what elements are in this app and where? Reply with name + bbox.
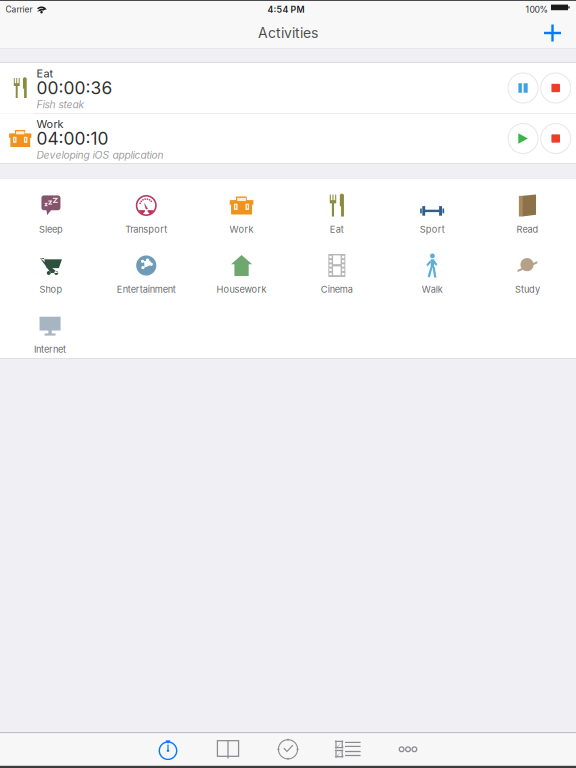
staticText: Activities xyxy=(258,24,318,41)
staticText: Housework xyxy=(217,284,267,295)
button[interactable]: Entertainment xyxy=(99,238,194,298)
button[interactable]: Start xyxy=(506,113,540,163)
staticText: Fish steak xyxy=(36,98,84,111)
staticText: Walk xyxy=(422,284,443,295)
staticText: Sport xyxy=(420,224,445,235)
button[interactable]: Eat xyxy=(289,178,384,238)
button[interactable]: Stop xyxy=(540,63,571,113)
staticText: Study xyxy=(515,284,540,295)
button[interactable]: Cinema xyxy=(289,238,384,298)
staticText: Read xyxy=(516,224,538,235)
staticText: Internet xyxy=(34,344,66,355)
button[interactable]: Pause xyxy=(506,63,540,113)
button[interactable]: Sport xyxy=(384,178,480,238)
staticText: Transport xyxy=(125,224,167,235)
button[interactable]: Statistics xyxy=(318,734,378,764)
staticText: Shop xyxy=(39,284,62,295)
button[interactable]: Internet xyxy=(2,298,98,358)
button[interactable]: Sleep xyxy=(3,178,99,238)
button[interactable]: Transport xyxy=(99,178,194,238)
staticText: Eat xyxy=(36,67,53,80)
staticText: Entertainment xyxy=(117,284,176,295)
button[interactable]: Shop xyxy=(3,238,99,298)
staticText: 00:00:36 xyxy=(36,77,112,98)
button[interactable]: Goals xyxy=(258,734,318,764)
button[interactable]: Journal xyxy=(198,734,258,764)
staticText: Work xyxy=(36,117,63,131)
staticText: Work xyxy=(230,224,254,235)
button[interactable]: Housework xyxy=(194,238,289,298)
staticText: Carrier xyxy=(5,4,32,15)
button[interactable]: Add xyxy=(532,19,573,46)
button[interactable]: Study xyxy=(480,238,575,298)
staticText: Sleep xyxy=(39,224,63,235)
button[interactable]: Timers xyxy=(138,734,198,764)
staticText: 100% xyxy=(525,4,548,15)
button[interactable]: Stop xyxy=(540,113,571,163)
staticText: Cinema xyxy=(321,284,353,295)
button[interactable]: More xyxy=(378,734,438,764)
button[interactable]: Walk xyxy=(384,238,480,298)
staticText: Developing iOS application xyxy=(36,149,163,161)
staticText: 4:54 PM xyxy=(267,4,304,15)
button[interactable]: Work xyxy=(194,178,289,238)
staticText: Eat xyxy=(330,224,344,235)
button[interactable]: Read xyxy=(480,178,575,238)
staticText: 04:00:10 xyxy=(36,128,108,149)
